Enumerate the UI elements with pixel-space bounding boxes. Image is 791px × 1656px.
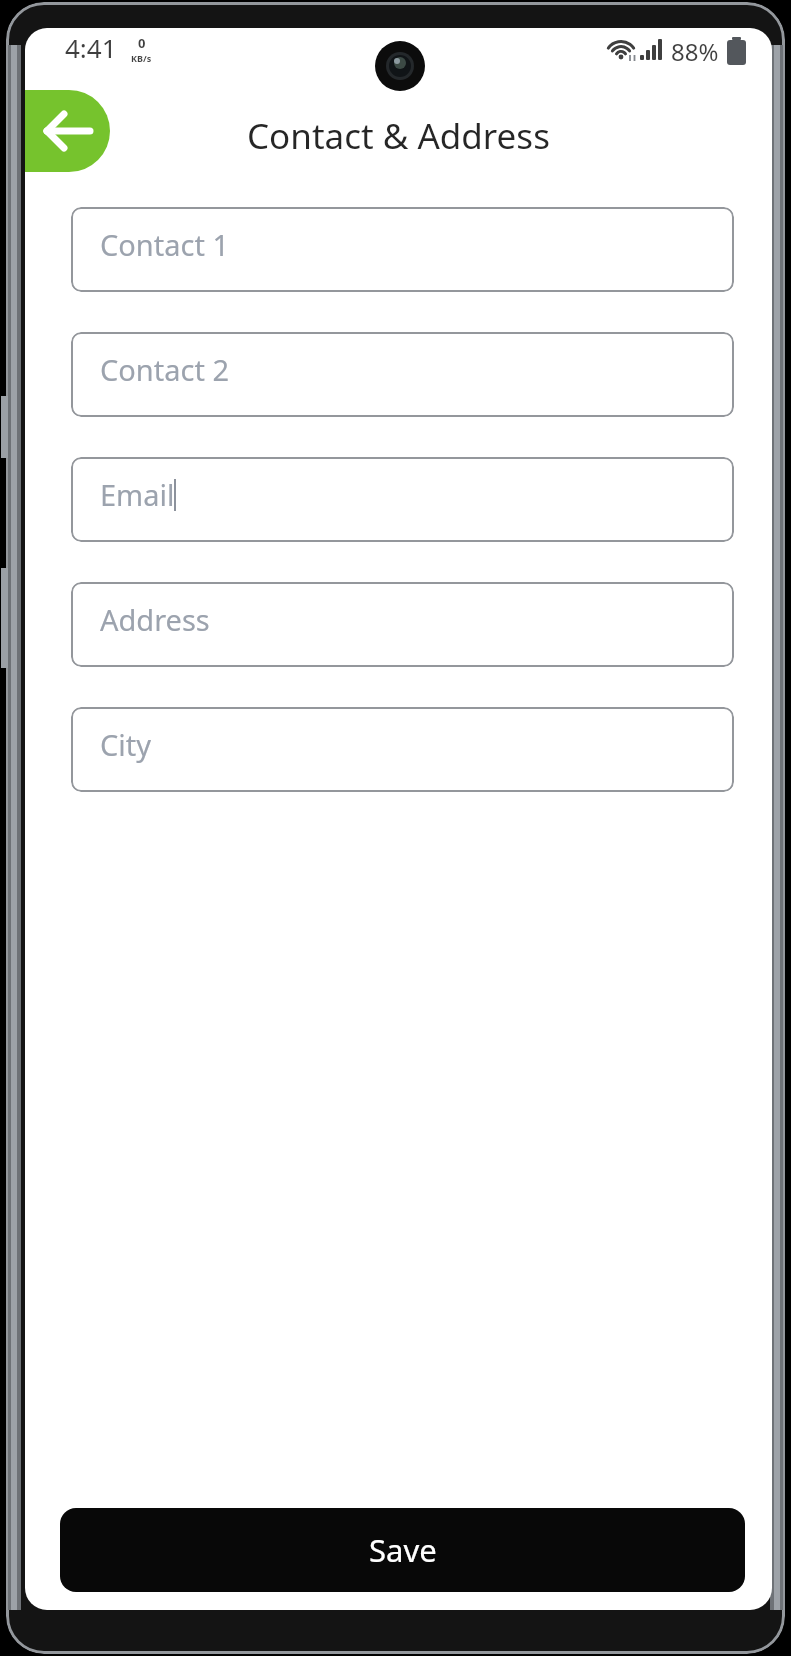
- button[interactable]: Contact 2: [71, 332, 734, 417]
- staticText: Save: [369, 1529, 437, 1571]
- staticText: KB/s: [131, 52, 152, 64]
- button[interactable]: Save: [60, 1508, 745, 1592]
- button[interactable]: City: [71, 707, 734, 792]
- button[interactable]: [25, 90, 110, 172]
- button[interactable]: Contact 1: [71, 207, 734, 292]
- button[interactable]: Address: [71, 582, 734, 667]
- staticText: City: [100, 725, 152, 764]
- staticText: Contact & Address: [247, 112, 550, 160]
- staticText: Email: [100, 475, 175, 514]
- staticText: Address: [100, 600, 210, 639]
- staticText: 88%: [671, 35, 719, 68]
- staticText: Contact 1: [100, 225, 230, 264]
- staticText: 4:41: [65, 30, 117, 65]
- staticText: Contact 2: [100, 350, 230, 389]
- button[interactable]: Email: [71, 457, 734, 542]
- staticText: 0: [138, 34, 146, 52]
